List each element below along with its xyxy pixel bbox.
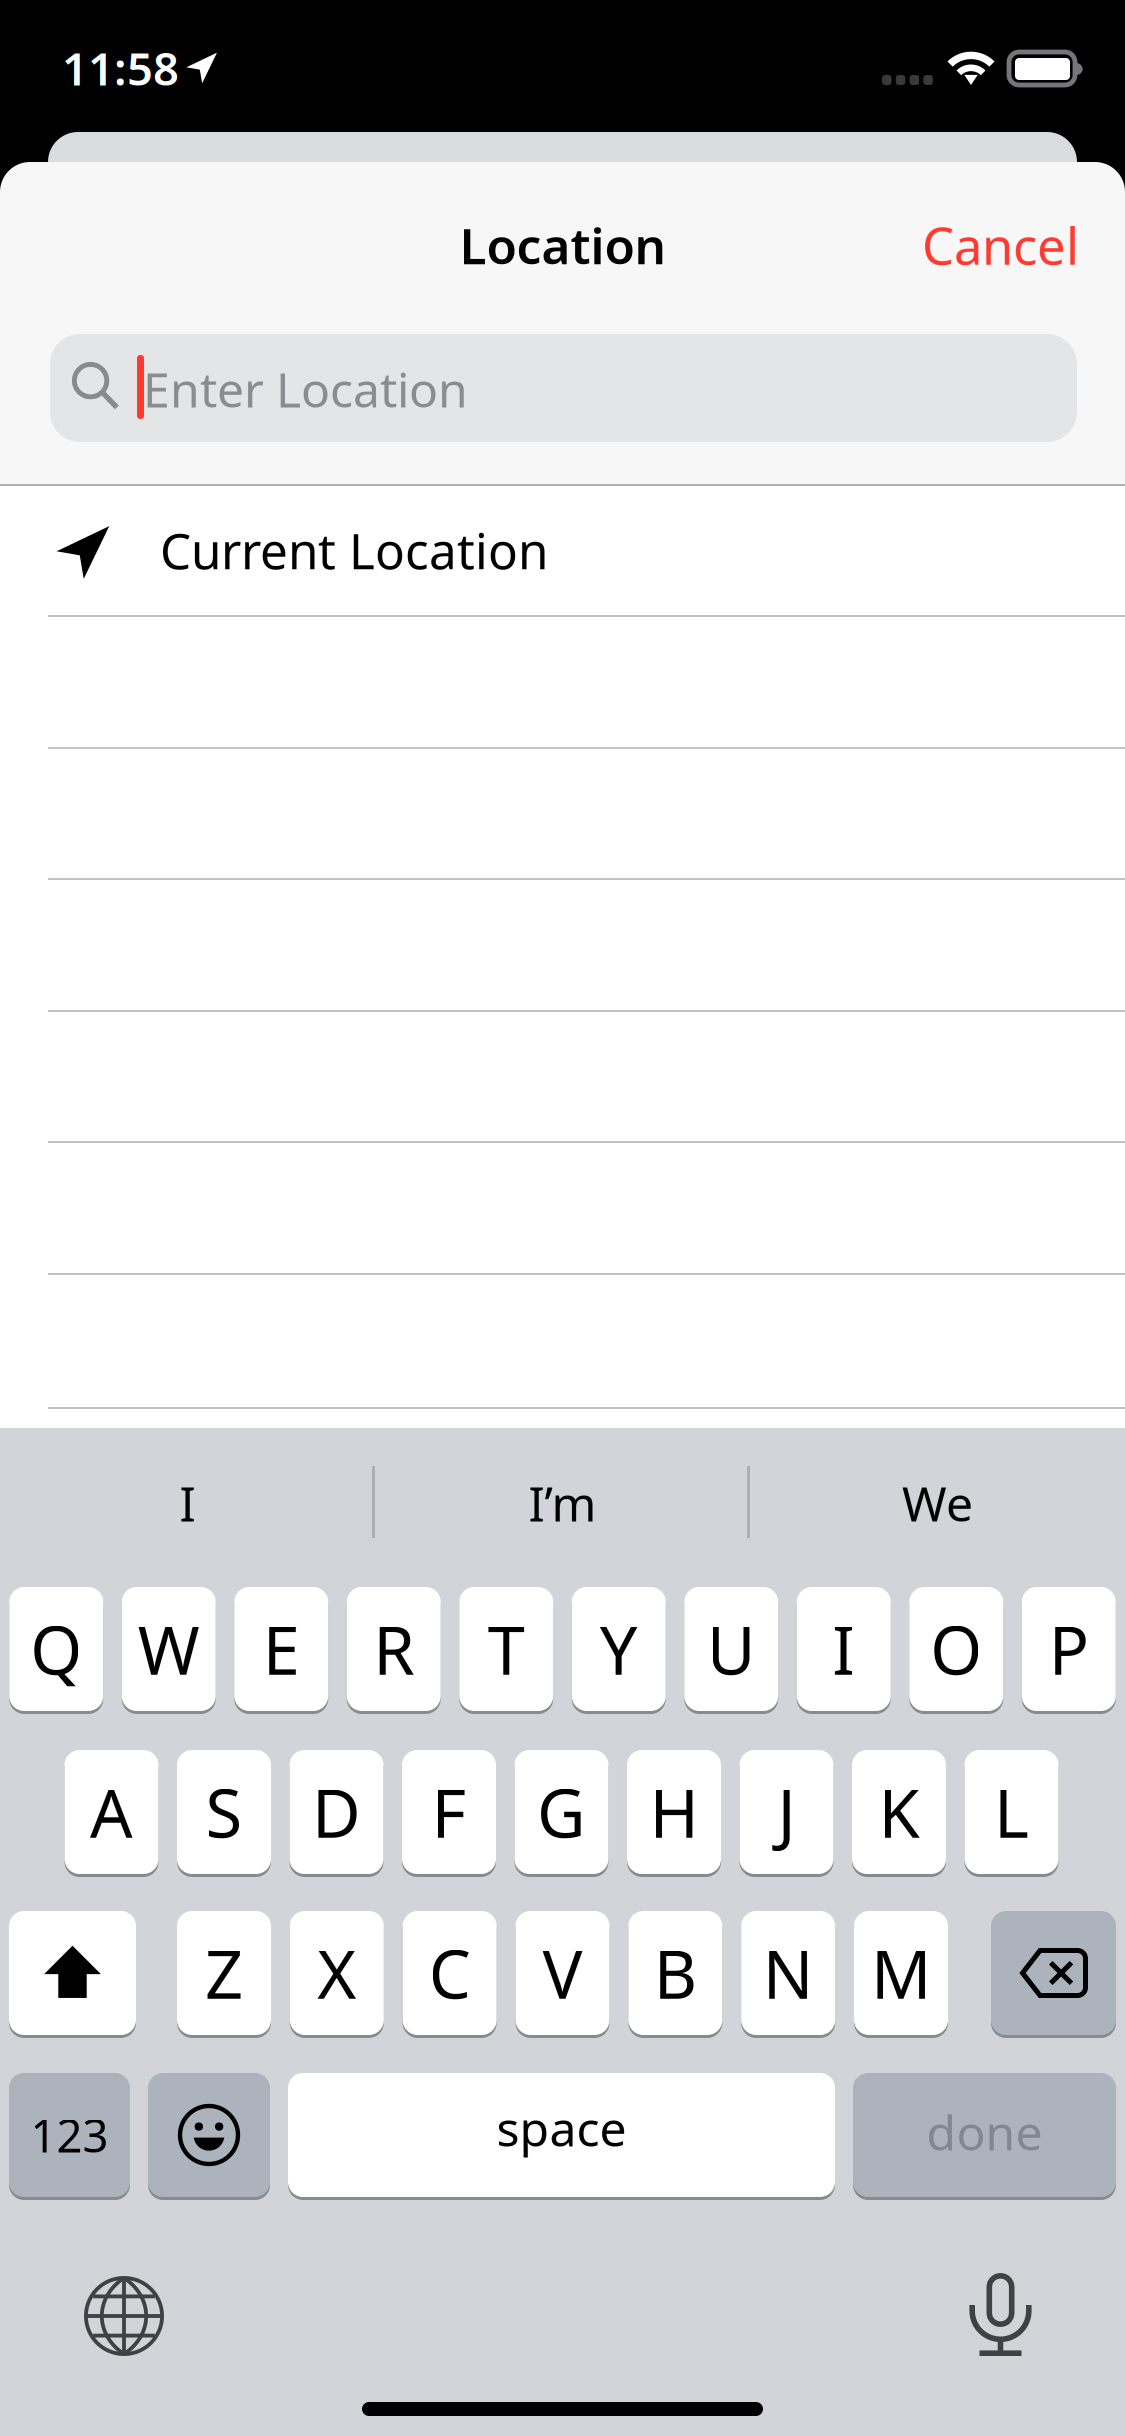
button[interactable]: Q: [9, 1587, 103, 1714]
staticText: A: [90, 1768, 133, 1856]
staticText: X: [317, 1929, 356, 2017]
staticText: V: [542, 1929, 582, 2017]
staticText: S: [205, 1768, 242, 1856]
button[interactable]: 123: [9, 2073, 130, 2200]
button[interactable]: Emoji: [148, 2073, 270, 2200]
staticText: 11:58: [62, 38, 179, 98]
staticText: I: [832, 1605, 855, 1693]
staticText: Current Location: [160, 517, 548, 583]
button[interactable]: O: [909, 1587, 1003, 1714]
button[interactable]: done: [853, 2073, 1116, 2200]
button[interactable]: P: [1022, 1587, 1116, 1714]
staticText: B: [654, 1929, 697, 2017]
staticText: C: [429, 1929, 471, 2017]
staticText: T: [488, 1605, 525, 1693]
staticText: Y: [600, 1605, 638, 1693]
staticText: J: [777, 1768, 795, 1856]
staticText: M: [871, 1929, 931, 2017]
staticText: G: [537, 1768, 586, 1856]
button[interactable]: U: [684, 1587, 778, 1714]
staticText: I’m: [528, 1471, 596, 1535]
button[interactable]: S: [177, 1750, 271, 1877]
button[interactable]: I: [0, 1423, 375, 1583]
staticText: space: [496, 2096, 626, 2160]
button[interactable]: F: [402, 1750, 496, 1877]
button[interactable]: K: [852, 1750, 946, 1877]
staticText: D: [312, 1768, 361, 1856]
staticText: done: [926, 2100, 1042, 2164]
staticText: Z: [205, 1929, 243, 2017]
button[interactable]: Z: [177, 1911, 271, 2038]
staticText: P: [1049, 1605, 1089, 1693]
button[interactable]: Delete: [991, 1911, 1116, 2038]
staticText: F: [431, 1768, 466, 1856]
button[interactable]: V: [515, 1911, 609, 2038]
staticText: E: [263, 1605, 300, 1693]
button[interactable]: Next keyboard: [64, 2256, 184, 2376]
button[interactable]: Dictate: [951, 2253, 1050, 2377]
button[interactable]: C: [403, 1911, 497, 2038]
staticText: Location: [459, 212, 665, 278]
button[interactable]: X: [290, 1911, 384, 2038]
button[interactable]: D: [289, 1750, 383, 1877]
button[interactable]: H: [627, 1750, 721, 1877]
staticText: H: [649, 1768, 698, 1856]
button[interactable]: Current Location: [0, 486, 1125, 617]
button[interactable]: M: [854, 1911, 948, 2038]
button[interactable]: T: [459, 1587, 553, 1714]
button[interactable]: Y: [572, 1587, 666, 1714]
staticText: O: [930, 1605, 982, 1693]
staticText: Q: [30, 1605, 82, 1693]
button[interactable]: I’m: [375, 1423, 750, 1583]
staticText: K: [878, 1768, 919, 1856]
staticText: 123: [30, 2105, 108, 2165]
button[interactable]: R: [347, 1587, 441, 1714]
button[interactable]: A: [64, 1750, 158, 1877]
button[interactable]: E: [234, 1587, 328, 1714]
staticText: R: [373, 1605, 414, 1693]
button[interactable]: W: [122, 1587, 216, 1714]
button[interactable]: space: [288, 2073, 835, 2200]
button[interactable]: I: [797, 1587, 891, 1714]
staticText: We: [902, 1471, 973, 1535]
staticText: Enter Location: [143, 357, 468, 421]
staticText: L: [994, 1768, 1029, 1856]
button[interactable]: We: [750, 1423, 1125, 1583]
button[interactable]: G: [514, 1750, 608, 1877]
button[interactable]: N: [741, 1911, 835, 2038]
button[interactable]: Shift: [9, 1911, 136, 2038]
button[interactable]: J: [739, 1750, 833, 1877]
staticText: U: [707, 1605, 756, 1693]
button[interactable]: Cancel: [824, 203, 1079, 287]
staticText: I: [179, 1471, 195, 1535]
staticText: Cancel: [922, 211, 1079, 279]
staticText: W: [138, 1605, 200, 1693]
button[interactable]: B: [628, 1911, 722, 2038]
button[interactable]: L: [964, 1750, 1058, 1877]
staticText: N: [763, 1929, 814, 2017]
